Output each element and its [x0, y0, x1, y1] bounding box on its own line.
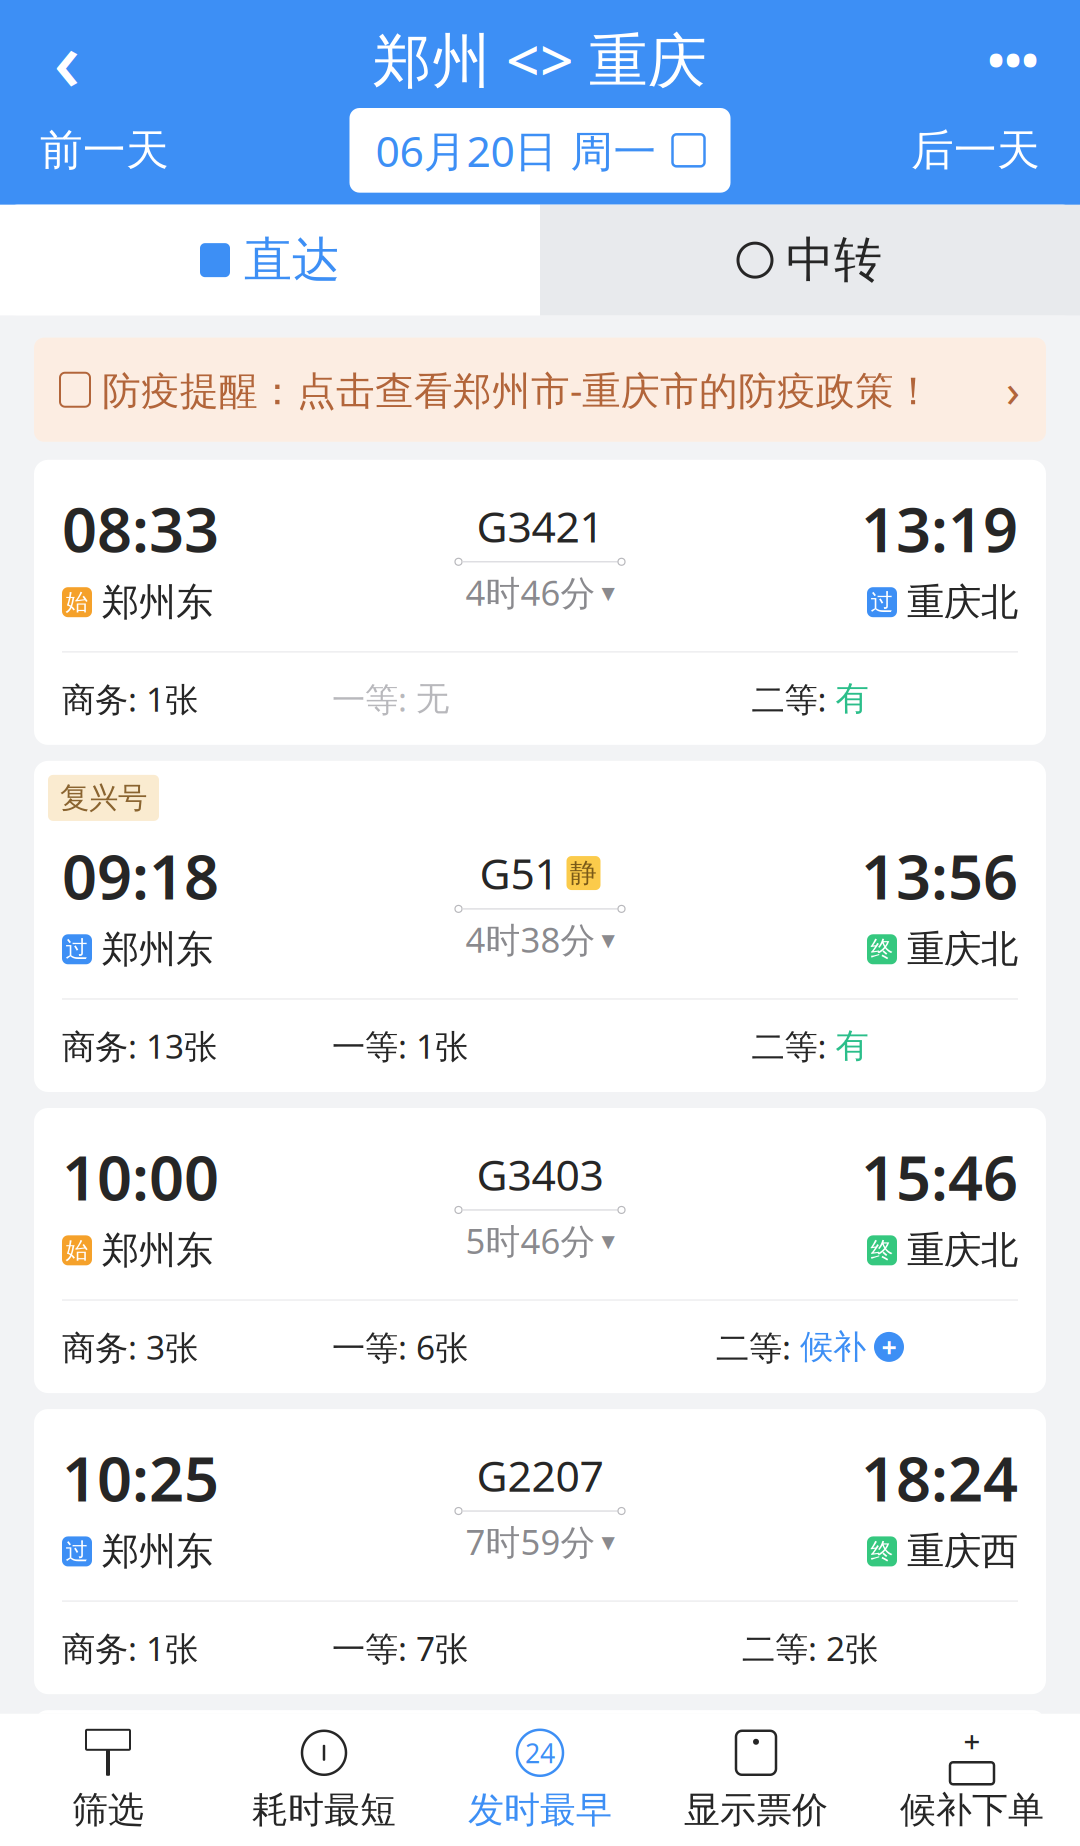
staticText: ▾: [601, 1526, 614, 1557]
staticText: 15:46: [861, 1136, 1018, 1217]
staticText: 商务:: [62, 677, 146, 721]
staticText: 过: [870, 588, 893, 616]
button[interactable]: 直达: [0, 205, 540, 316]
staticText: 郑州东: [102, 579, 213, 625]
staticText: 直达: [244, 231, 340, 290]
staticText: 4时46分: [465, 569, 595, 615]
staticText: 10:00: [62, 1136, 219, 1217]
staticText: 筛选: [72, 1788, 144, 1832]
button[interactable]: 复兴号: [34, 761, 1046, 1092]
staticText: 5时46分: [465, 1217, 595, 1263]
button[interactable]: +: [864, 1714, 1080, 1846]
staticText: 6张: [416, 1325, 468, 1369]
staticText: G3403: [476, 1146, 603, 1202]
staticText: 08:33: [62, 488, 219, 569]
staticText: 二等:: [751, 677, 835, 721]
staticText: 前一天: [40, 124, 169, 176]
staticText: 郑州 <> 重庆: [373, 20, 707, 98]
button[interactable]: 防疫提醒：点击查看郑州市-重庆市的防疫政策！: [34, 338, 1046, 442]
staticText: 郑州东: [102, 1227, 213, 1273]
button[interactable]: 返回: [22, 14, 112, 104]
staticText: 1张: [146, 1626, 198, 1670]
staticText: 24: [525, 1735, 555, 1770]
staticText: 一等:: [332, 677, 416, 721]
staticText: +: [963, 1721, 980, 1760]
staticText: 重庆西: [907, 1528, 1018, 1574]
staticText: 13:56: [861, 835, 1018, 916]
button[interactable]: 中转: [540, 205, 1080, 316]
staticText: 候补: [800, 1326, 866, 1367]
staticText: 始: [65, 1236, 88, 1264]
staticText: 过: [65, 935, 88, 963]
staticText: 7张: [416, 1626, 468, 1670]
staticText: •••: [987, 29, 1038, 89]
staticText: 有: [835, 1025, 868, 1066]
staticText: G51: [479, 845, 558, 901]
button[interactable]: 耗时最短: [216, 1714, 432, 1846]
staticText: 1张: [146, 677, 198, 721]
staticText: 重庆北: [907, 926, 1018, 972]
staticText: 18:24: [861, 1437, 1018, 1518]
staticText: 复兴号: [60, 780, 147, 816]
staticText: 终: [870, 1537, 893, 1565]
staticText: G3421: [476, 498, 603, 554]
staticText: 1张: [416, 1024, 468, 1068]
staticText: ‹: [53, 4, 80, 114]
staticText: 10:25: [62, 1437, 219, 1518]
staticText: 耗时最短: [252, 1788, 396, 1832]
staticText: 商务:: [62, 1626, 146, 1670]
staticText: 过: [65, 1537, 88, 1565]
staticText: 始: [65, 588, 88, 616]
staticText: 中转: [786, 231, 882, 290]
staticText: 4时38分: [465, 916, 595, 962]
staticText: 二等:: [742, 1626, 826, 1670]
staticText: 13张: [146, 1024, 217, 1068]
staticText: 显示票价: [684, 1788, 828, 1832]
staticText: 商务:: [62, 1325, 146, 1369]
button[interactable]: 显示票价: [648, 1714, 864, 1846]
staticText: G2207: [476, 1447, 603, 1504]
staticText: 商务:: [62, 1024, 146, 1068]
staticText: 重庆北: [907, 579, 1018, 625]
staticText: 7时59分: [465, 1518, 595, 1564]
button[interactable]: 筛选: [0, 1714, 216, 1846]
staticText: 有: [835, 678, 868, 719]
staticText: 13:19: [861, 488, 1018, 569]
button[interactable]: 06月20日 周一: [349, 108, 730, 193]
staticText: +: [881, 1329, 896, 1365]
staticText: ›: [1006, 360, 1020, 420]
staticText: 一等:: [332, 1626, 416, 1670]
staticText: 3张: [146, 1325, 198, 1369]
staticText: 静: [570, 857, 597, 889]
staticText: 06月20日 周一: [375, 122, 656, 179]
staticText: 郑州东: [102, 926, 213, 972]
staticText: 复兴号: [60, 1729, 147, 1765]
staticText: 发时最早: [468, 1788, 612, 1832]
button[interactable]: 10:25: [34, 1409, 1046, 1694]
staticText: 二等:: [716, 1325, 800, 1369]
staticText: 候补下单: [900, 1788, 1044, 1832]
button[interactable]: 10:00: [34, 1108, 1046, 1393]
staticText: ▾: [601, 1225, 614, 1256]
staticText: 二等:: [751, 1024, 835, 1068]
button[interactable]: 前一天: [30, 124, 179, 176]
staticText: 终: [870, 935, 893, 963]
staticText: 郑州东: [102, 1528, 213, 1574]
button[interactable]: 更多: [968, 14, 1058, 104]
button[interactable]: 08:33: [34, 460, 1046, 745]
staticText: 无: [416, 678, 449, 719]
staticText: 2张: [826, 1626, 878, 1670]
staticText: 09:18: [62, 835, 219, 916]
staticText: ▾: [601, 577, 614, 607]
staticText: 重庆北: [907, 1227, 1018, 1273]
staticText: 一等:: [332, 1325, 416, 1369]
staticText: 终: [870, 1236, 893, 1264]
button[interactable]: 后一天: [901, 124, 1050, 176]
button[interactable]: 24: [432, 1714, 648, 1846]
staticText: 防疫提醒：点击查看郑州市-重庆市的防疫政策！: [90, 364, 933, 415]
staticText: 一等:: [332, 1024, 416, 1068]
staticText: 后一天: [911, 124, 1040, 176]
staticText: ▾: [601, 924, 614, 955]
